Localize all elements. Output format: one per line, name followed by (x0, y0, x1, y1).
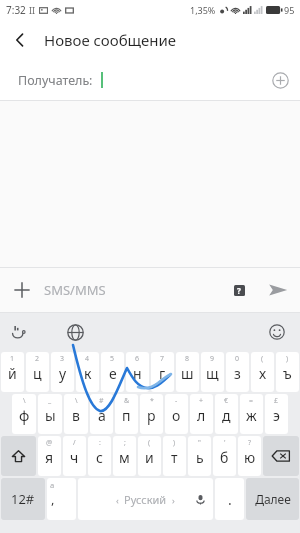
staticText: Получатель: (18, 72, 93, 89)
button[interactable]: Numbers and symbols (1, 478, 45, 520)
button[interactable]: ' (213, 436, 236, 476)
button[interactable]: Back (0, 20, 40, 60)
staticText: + (199, 396, 204, 406)
staticText: 0 (235, 354, 240, 364)
staticText: 4 (85, 354, 90, 364)
staticText: ъ (283, 364, 292, 383)
button[interactable]: = (240, 394, 263, 434)
button[interactable]: + (190, 394, 213, 434)
button[interactable]: £ (265, 394, 288, 434)
button[interactable]: 8 (176, 352, 199, 392)
button[interactable]: ( (138, 436, 161, 476)
staticText: с (96, 448, 103, 467)
staticText: = (249, 396, 254, 406)
staticText: SMS/MMS (44, 281, 222, 299)
button[interactable]: / (63, 436, 86, 476)
button[interactable]: ? (238, 436, 261, 476)
staticText: ш (181, 364, 194, 383)
button[interactable]: \ (64, 394, 88, 434)
button[interactable]: Add contact (260, 60, 300, 100)
staticText: 8 (185, 354, 190, 364)
button[interactable]: Shift (1, 436, 36, 476)
button[interactable]: 9 (201, 352, 224, 392)
button[interactable]: Получатель: (0, 60, 300, 100)
button[interactable]: : (88, 436, 111, 476)
button[interactable]: Handwriting (0, 313, 38, 351)
staticText: ) (173, 438, 176, 448)
button[interactable]: 5 (101, 352, 124, 392)
button[interactable]: - (165, 394, 188, 434)
staticText: й (8, 364, 17, 383)
button[interactable]: 7 (151, 352, 174, 392)
staticText: " (198, 438, 201, 448)
button[interactable]: \ (12, 394, 36, 434)
staticText: ь (196, 448, 204, 467)
staticText: ю (244, 448, 256, 467)
button[interactable]: _ (38, 394, 62, 434)
button[interactable]: 2 (26, 352, 49, 392)
staticText: ч (70, 448, 79, 467)
button[interactable]: Next (246, 478, 299, 520)
staticText: 7:32 (6, 3, 26, 17)
button[interactable]: 1 (1, 352, 24, 392)
staticText: - (175, 396, 178, 406)
staticText: 7 (160, 354, 165, 364)
button[interactable]: . (215, 478, 244, 520)
staticText: 1 (10, 354, 15, 364)
button[interactable]: ‹ (78, 478, 213, 520)
staticText: а (98, 406, 106, 425)
staticText: Новое сообщение (44, 30, 177, 50)
staticText: \ (75, 396, 78, 406)
button[interactable]: 3 (51, 352, 74, 392)
button[interactable]: Emoji (258, 313, 296, 351)
staticText: п (122, 406, 131, 425)
staticText: 12# (11, 490, 35, 508)
button[interactable]: Change language (56, 313, 94, 351)
staticText: к (84, 364, 92, 383)
button[interactable]: * (140, 394, 163, 434)
staticText: г (159, 364, 166, 383)
button[interactable]: a (47, 478, 76, 520)
staticText: * (150, 396, 154, 406)
staticText: е (109, 364, 117, 383)
staticText: ' (224, 438, 226, 448)
staticText: ж (246, 406, 257, 425)
staticText: б (220, 448, 229, 467)
button[interactable]: € (215, 394, 238, 434)
staticText: з (234, 364, 241, 383)
staticText: 6 (135, 354, 140, 364)
button[interactable]: 0 (226, 352, 249, 392)
button[interactable]: 4 (76, 352, 99, 392)
button[interactable]: ) (276, 352, 299, 392)
staticText: @ (46, 438, 53, 448)
button[interactable]: Backspace (263, 436, 299, 476)
staticText: \ (23, 396, 26, 406)
staticText: ‹ (116, 494, 119, 506)
staticText: 1,35% (190, 4, 216, 16)
staticText: ( (261, 354, 264, 364)
button[interactable]: Add attachment (0, 268, 44, 312)
staticText: ф (19, 406, 30, 425)
staticText: в (72, 406, 80, 425)
button[interactable]: ( (251, 352, 274, 392)
button[interactable]: ) (163, 436, 186, 476)
staticText: , (51, 490, 55, 508)
staticText: : (99, 438, 101, 448)
staticText: _ (48, 396, 52, 406)
staticText: х (259, 364, 267, 383)
button[interactable]: Message type (222, 273, 256, 307)
staticText: ; (124, 438, 126, 448)
staticText: # (99, 396, 104, 406)
staticText: £ (274, 396, 279, 406)
button[interactable]: # (90, 394, 113, 434)
button[interactable]: ; (113, 436, 136, 476)
button[interactable]: & (115, 394, 138, 434)
button[interactable]: @ (38, 436, 61, 476)
staticText: ) (286, 354, 289, 364)
staticText: ( (148, 438, 151, 448)
staticText: Русский (124, 492, 167, 507)
staticText: щ (206, 364, 219, 383)
button[interactable]: " (188, 436, 211, 476)
button[interactable]: Send (256, 268, 300, 312)
button[interactable]: 6 (126, 352, 149, 392)
